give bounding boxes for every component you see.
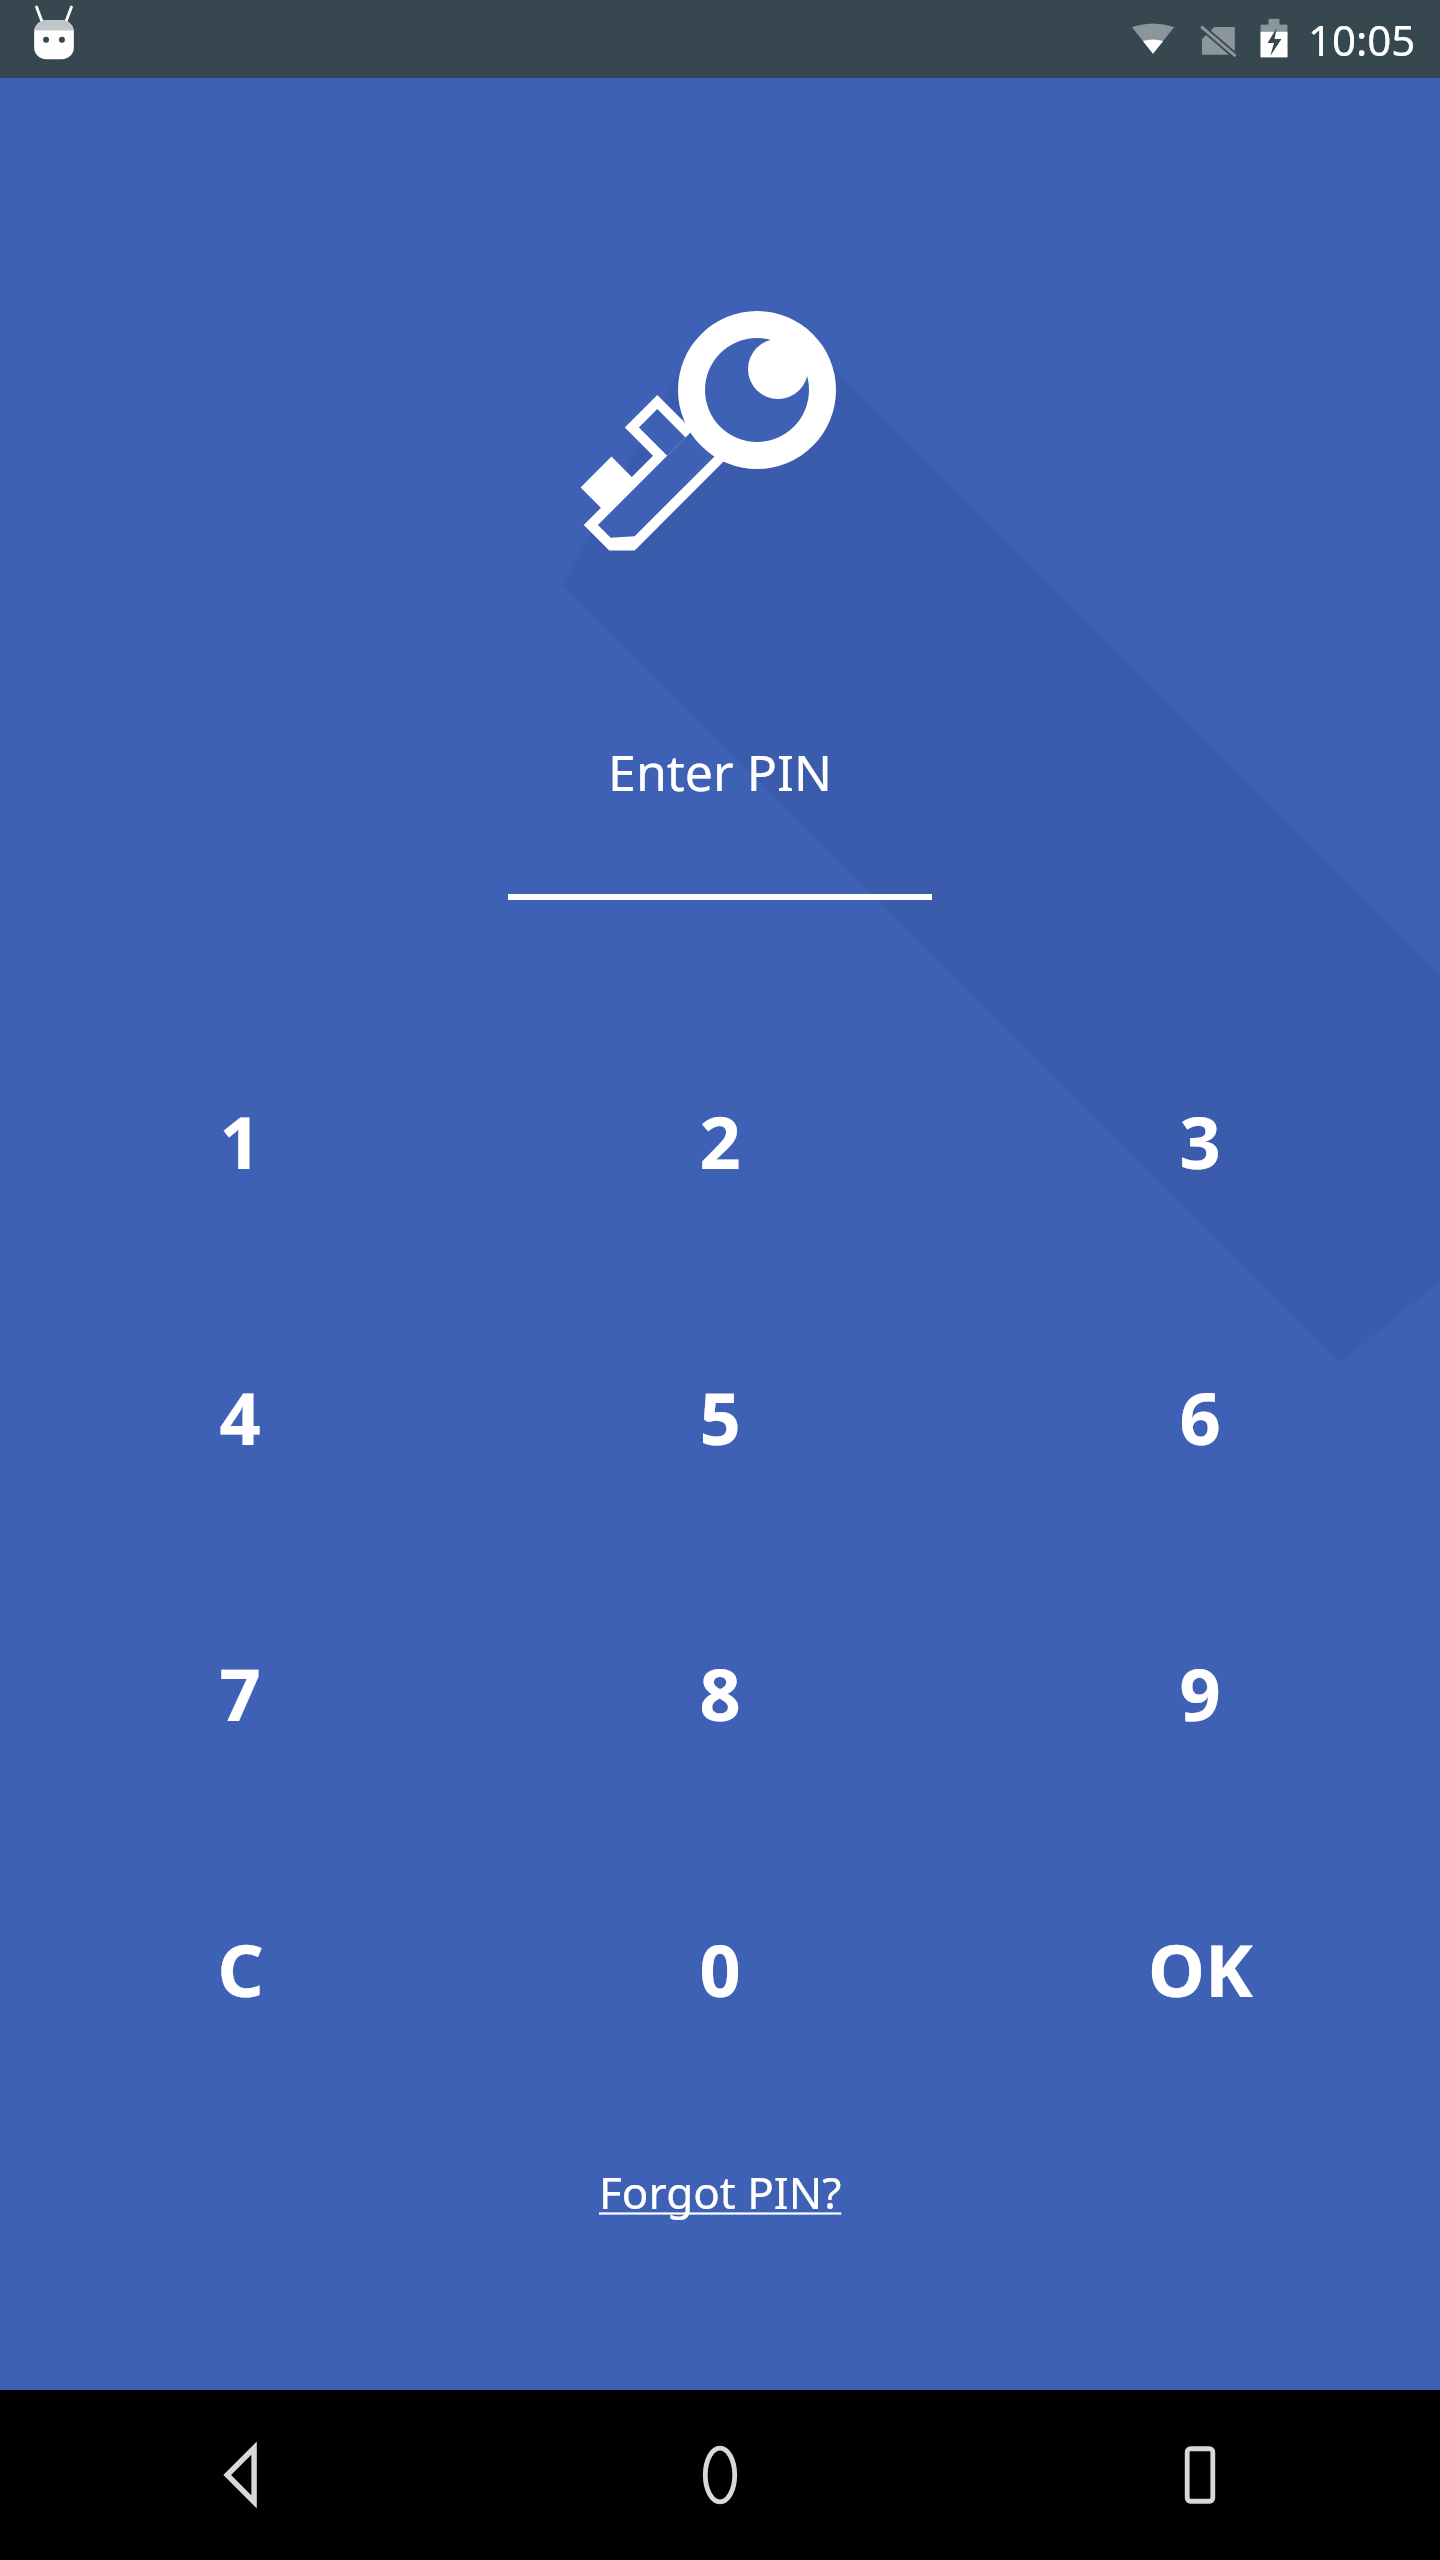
button[interactable]: C <box>0 1881 480 2057</box>
staticText: 0 <box>699 1920 741 2018</box>
staticText: 2 <box>699 1092 741 1190</box>
button[interactable]: 3 <box>960 1053 1440 1229</box>
staticText: OK <box>1148 1920 1253 2018</box>
button[interactable]: 4 <box>0 1329 480 1505</box>
button[interactable]: 1 <box>0 1053 480 1229</box>
staticText: 8 <box>699 1644 741 1742</box>
staticText: 4 <box>219 1368 261 1466</box>
button[interactable]: Back <box>0 2390 480 2560</box>
button[interactable]: 8 <box>480 1605 960 1781</box>
button[interactable]: 2 <box>480 1053 960 1229</box>
button[interactable]: 5 <box>480 1329 960 1505</box>
button[interactable]: OK <box>960 1881 1440 2057</box>
button[interactable]: 9 <box>960 1605 1440 1781</box>
staticText: 1 <box>219 1092 261 1190</box>
button[interactable]: 7 <box>0 1605 480 1781</box>
staticText: 7 <box>219 1644 261 1742</box>
staticText: Forgot PIN? <box>599 2162 842 2222</box>
staticText: 6 <box>1179 1368 1221 1466</box>
button[interactable]: Forgot PIN? <box>575 2148 866 2236</box>
button[interactable]: 0 <box>480 1881 960 2057</box>
staticText: 3 <box>1179 1092 1221 1190</box>
button[interactable]: Home <box>480 2390 960 2560</box>
staticText: 9 <box>1179 1644 1221 1742</box>
button[interactable]: 6 <box>960 1329 1440 1505</box>
staticText: 5 <box>699 1368 741 1466</box>
staticText: C <box>217 1920 264 2018</box>
staticText: Enter PIN <box>608 738 832 806</box>
staticText: 10:05 <box>1308 11 1416 68</box>
button[interactable]: Recent apps <box>960 2390 1440 2560</box>
